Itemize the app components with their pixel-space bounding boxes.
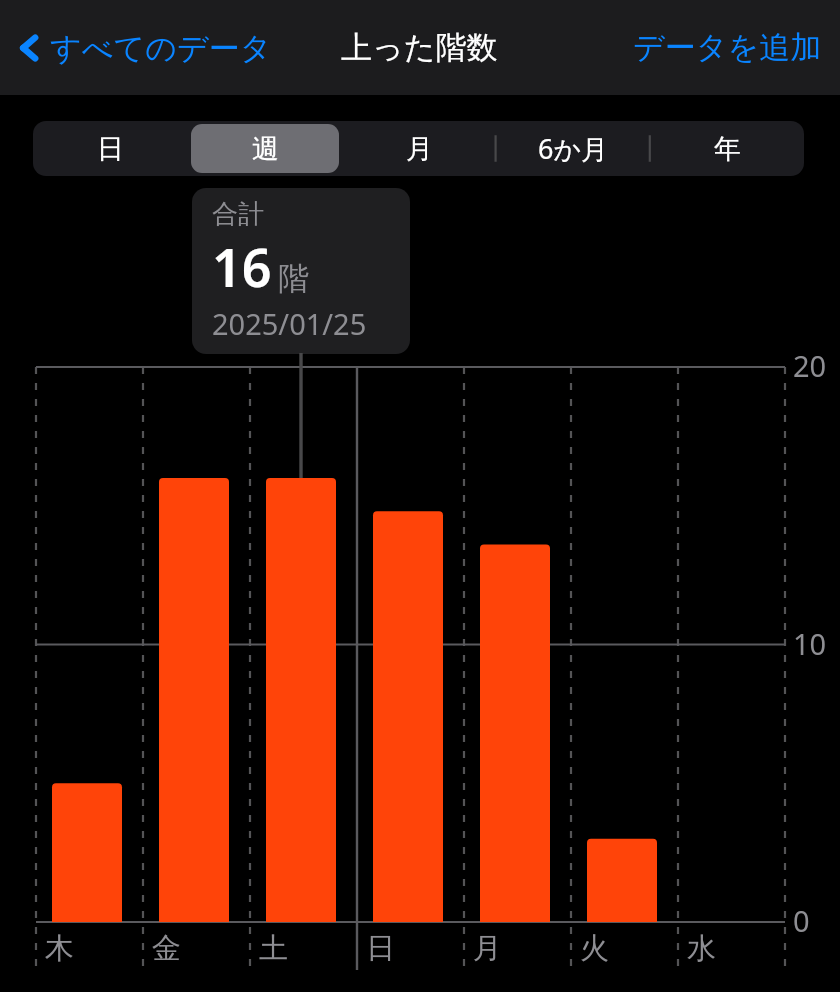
button[interactable]: 合計	[192, 188, 410, 354]
button[interactable]: 週	[191, 124, 339, 173]
staticText: 土	[259, 930, 288, 967]
staticText: データを追加	[633, 28, 822, 67]
staticText: 年	[714, 132, 741, 166]
button[interactable]: 年	[653, 124, 801, 173]
staticText: 16	[212, 231, 272, 302]
staticText: 週	[252, 132, 279, 166]
button[interactable]: 月	[345, 124, 493, 173]
staticText: 月	[473, 930, 502, 967]
staticText: 月	[406, 132, 433, 166]
staticText: 上った階数	[341, 28, 498, 67]
button[interactable]: すべてのデータ	[12, 22, 278, 74]
button[interactable]: データを追加	[615, 20, 840, 75]
staticText: 10	[793, 624, 827, 663]
button[interactable]: 日	[36, 124, 185, 173]
staticText: 階	[278, 259, 309, 298]
staticText: 6か月	[538, 130, 609, 167]
staticText: 日	[366, 930, 395, 967]
staticText: 0	[793, 901, 810, 940]
staticText: 水	[687, 930, 716, 967]
staticText: 木	[45, 930, 74, 967]
staticText: 日	[97, 132, 124, 166]
staticText: 20	[793, 346, 827, 385]
staticText: 金	[152, 930, 181, 967]
staticText: すべてのデータ	[50, 29, 272, 68]
staticText: 合計	[212, 198, 264, 231]
button[interactable]: 6か月	[499, 124, 647, 173]
staticText: 2025/01/25	[212, 304, 367, 343]
staticText: 火	[580, 930, 609, 967]
